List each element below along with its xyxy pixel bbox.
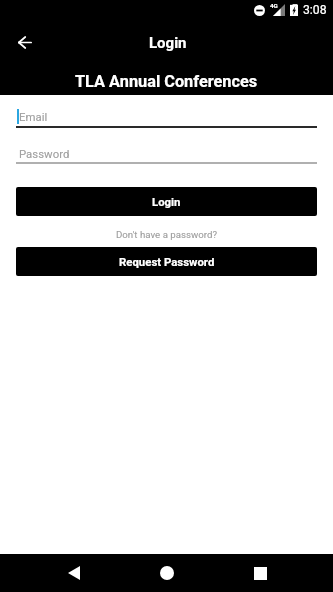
- staticText: Login: [149, 34, 187, 52]
- other: Mobile signal: [273, 4, 285, 16]
- button[interactable]: Back: [51, 554, 96, 592]
- staticText: Request Password: [119, 255, 215, 268]
- staticText: Login: [152, 195, 181, 208]
- button[interactable]: Password: [0, 141, 333, 164]
- button[interactable]: Don't have a password?: [0, 225, 333, 243]
- button[interactable]: Login: [16, 187, 317, 216]
- staticText: TLA Annual Conferences: [75, 72, 258, 91]
- button[interactable]: Home: [144, 554, 189, 592]
- button[interactable]: Email: [0, 102, 333, 128]
- button[interactable]: Request Password: [16, 247, 317, 276]
- other: Do not disturb: [254, 5, 265, 16]
- button[interactable]: Navigate up: [6, 20, 42, 64]
- button[interactable]: Recent apps: [238, 554, 283, 592]
- staticText: Email: [19, 110, 48, 123]
- staticText: 3:08: [303, 3, 327, 17]
- staticText: 4G: [270, 2, 278, 9]
- other: Battery charging: [290, 4, 298, 16]
- staticText: Password: [19, 147, 70, 160]
